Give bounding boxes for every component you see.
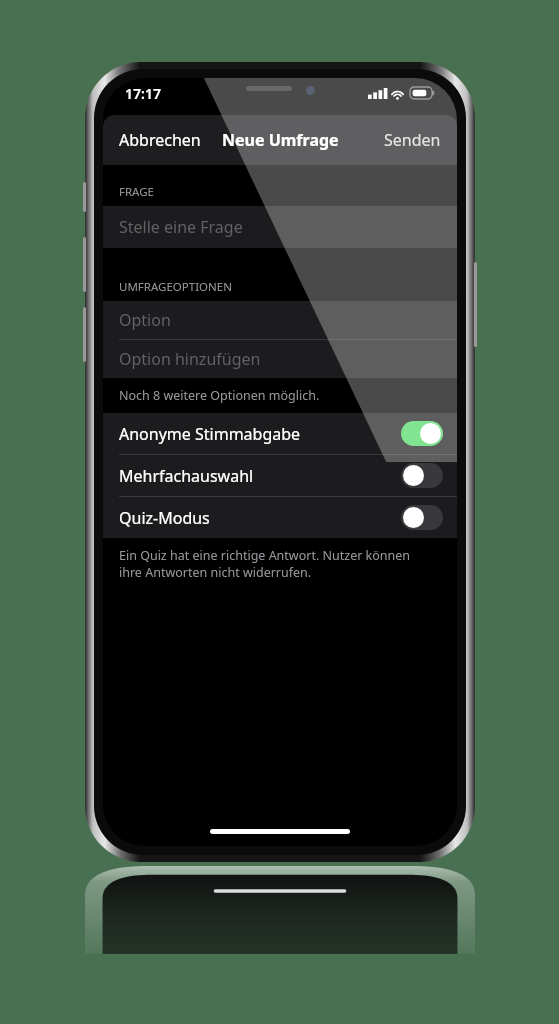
staticText: 17:17 [125,84,161,103]
staticText: Senden [384,129,441,151]
staticText: UMFRAGEOPTIONEN [119,279,232,295]
button[interactable]: Stelle eine Frage [103,206,457,248]
button[interactable]: Mehrfachauswahl [103,455,457,496]
button[interactable]: Anonyme Stimmabgabe [103,413,457,454]
button[interactable]: Abbrechen [109,123,211,157]
staticText: Abbrechen [119,129,201,151]
button[interactable]: Option [103,301,457,339]
staticText: Quiz-Modus [119,507,210,529]
staticText: FRAGE [119,184,155,200]
staticText: Mehrfachauswahl [119,465,254,487]
staticText: Neue Umfrage [222,129,339,151]
other: Quiz-Modus [401,505,443,530]
staticText: Stelle eine Frage [119,216,243,238]
other: Anonyme Stimmabgabe [401,421,443,446]
other: Mehrfachauswahl [401,463,443,488]
staticText: Ein Quiz hat eine richtige Antwort. Nutz… [119,547,427,581]
button[interactable]: Option hinzufügen [103,340,457,378]
staticText: Noch 8 weitere Optionen möglich. [119,387,320,404]
staticText: Anonyme Stimmabgabe [119,423,301,445]
button[interactable]: Senden [374,123,451,157]
staticText: Option hinzufügen [119,348,261,370]
staticText: Option [119,309,171,331]
button[interactable]: Quiz-Modus [103,497,457,538]
